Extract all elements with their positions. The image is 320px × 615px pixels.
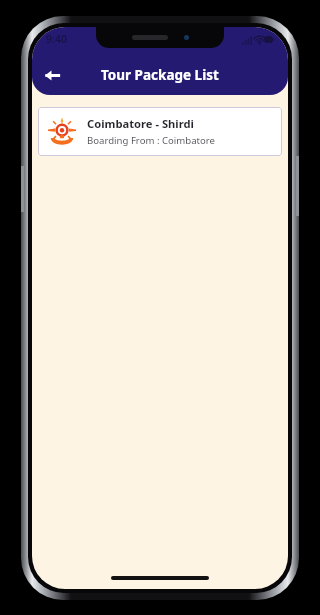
- staticText: Boarding From : Coimbatore: [87, 134, 216, 147]
- staticText: Coimbatore - Shirdi: [87, 116, 194, 131]
- button[interactable]: Coimbatore - Shirdi: [38, 107, 282, 156]
- staticText: Tour Package List: [101, 66, 219, 84]
- button[interactable]: Back: [32, 55, 72, 95]
- staticText: 9:40: [46, 32, 67, 46]
